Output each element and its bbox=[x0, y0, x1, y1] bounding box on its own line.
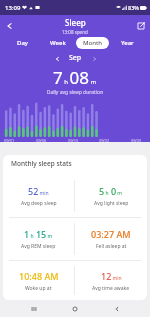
staticText: Day bbox=[17, 39, 28, 47]
staticText: 52 min bbox=[28, 185, 49, 197]
staticText: Sleep bbox=[65, 17, 86, 28]
staticText: 12 min bbox=[101, 270, 122, 282]
staticText: 7 h 08 m bbox=[53, 66, 97, 86]
staticText: Week bbox=[50, 39, 66, 47]
staticText: 1 h 15 m bbox=[24, 228, 53, 240]
staticText: Fell asleep at bbox=[96, 243, 127, 250]
button[interactable]: 5 h 0 m bbox=[75, 175, 147, 217]
button[interactable]: Year bbox=[111, 37, 144, 49]
staticText: 83% bbox=[128, 4, 139, 11]
staticText: Daily avg sleep duration bbox=[0, 89, 150, 96]
button[interactable]: Month bbox=[76, 37, 109, 49]
button[interactable]: Home bbox=[67, 301, 83, 317]
staticText: Monthly sleep stats bbox=[11, 159, 72, 168]
staticText: 10:48 AM bbox=[19, 270, 59, 282]
staticText: Avg time awake bbox=[92, 285, 130, 292]
staticText: Year bbox=[121, 39, 134, 47]
staticText: Avg light sleep bbox=[94, 200, 129, 207]
staticText: 13:09 bbox=[5, 4, 21, 12]
staticText: 5 h 0 m bbox=[99, 185, 123, 197]
staticText: 09/15 bbox=[68, 138, 79, 142]
button[interactable]: Week bbox=[41, 37, 74, 49]
button[interactable]: Share bbox=[132, 17, 150, 35]
staticText: Month bbox=[83, 39, 102, 47]
button[interactable]: 03:27 AM bbox=[75, 218, 147, 260]
staticText: Sep bbox=[69, 53, 82, 63]
staticText: 09/01 bbox=[4, 138, 15, 142]
button[interactable]: Previous month bbox=[51, 53, 62, 64]
staticText: Avg REM sleep bbox=[21, 243, 56, 250]
staticText: Avg deep sleep bbox=[21, 200, 57, 207]
staticText: 09/29 bbox=[131, 138, 142, 142]
button[interactable]: Recents bbox=[26, 301, 42, 317]
button[interactable]: 10:48 AM bbox=[3, 261, 74, 300]
staticText: Woke up at bbox=[25, 285, 52, 292]
staticText: 09/08 bbox=[36, 138, 47, 142]
staticText: 13:08 spend bbox=[62, 29, 88, 35]
staticText: 09/22 bbox=[99, 138, 110, 142]
button[interactable]: Back bbox=[109, 301, 125, 317]
button[interactable]: Day bbox=[6, 37, 39, 49]
staticText: 03:27 AM bbox=[91, 228, 131, 240]
button[interactable]: 52 min bbox=[3, 175, 74, 217]
button[interactable]: 1 h 15 m bbox=[3, 218, 74, 260]
button[interactable]: 12 min bbox=[75, 261, 147, 300]
button[interactable]: Back bbox=[0, 17, 18, 35]
button[interactable]: Next month bbox=[89, 53, 100, 64]
